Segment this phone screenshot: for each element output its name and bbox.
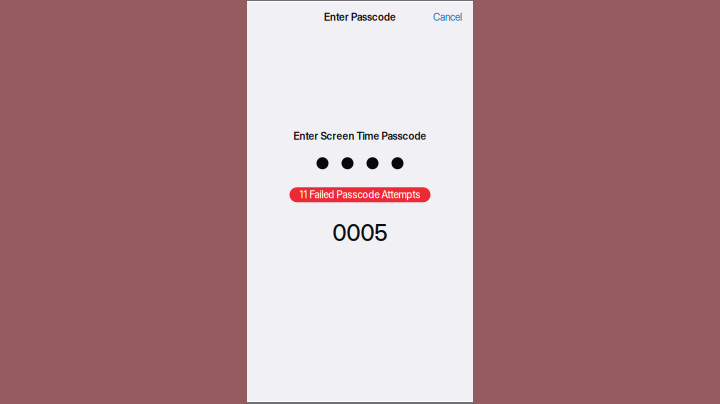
staticText: Enter Screen Time Passcode	[293, 130, 426, 142]
staticText: Enter Passcode	[324, 11, 396, 23]
staticText: 0005	[332, 219, 387, 246]
staticText: 11 Failed Passcode Attempts	[299, 189, 420, 201]
button[interactable]: Cancel	[423, 6, 473, 28]
staticText: Cancel	[433, 11, 462, 23]
